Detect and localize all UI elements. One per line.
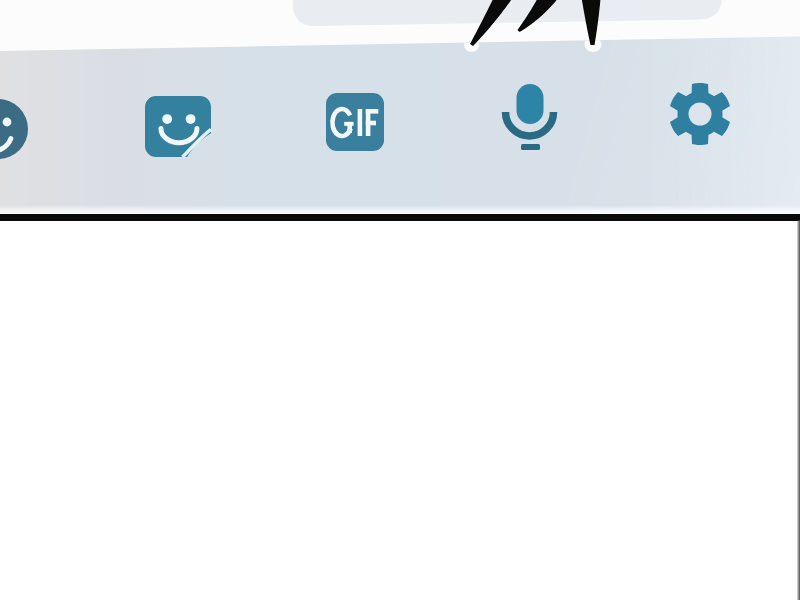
button[interactable]: Settings bbox=[668, 82, 732, 146]
button[interactable]: Emoji bbox=[0, 99, 28, 159]
button[interactable]: Stickers bbox=[145, 96, 211, 157]
button[interactable]: Voice input bbox=[500, 80, 560, 165]
button[interactable]: GIF bbox=[326, 93, 384, 151]
button[interactable]: Message input field bbox=[290, 0, 726, 30]
